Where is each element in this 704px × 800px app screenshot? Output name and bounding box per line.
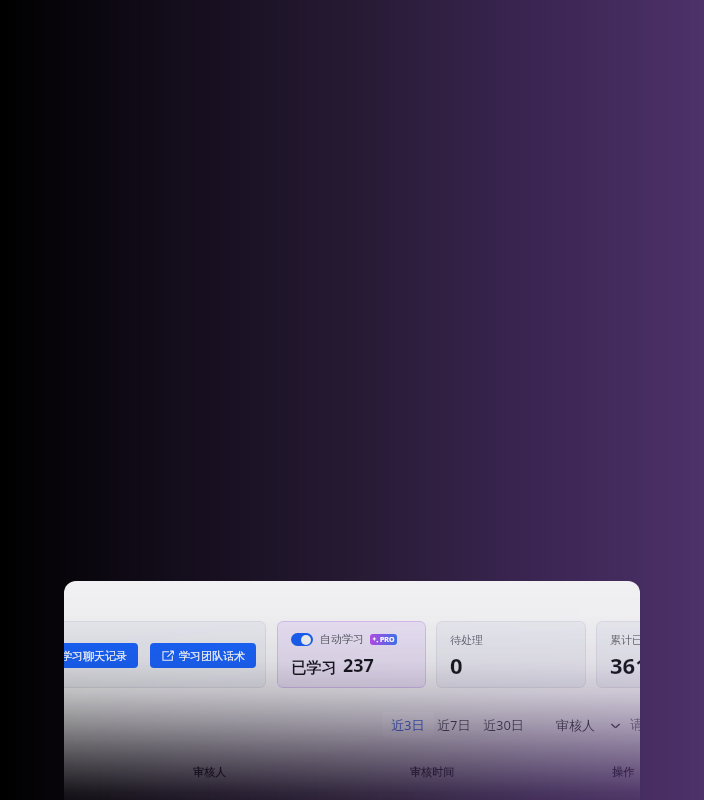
staticText: 操作: [612, 765, 634, 779]
button[interactable]: 待处理: [436, 621, 586, 688]
staticText: 近7日: [437, 716, 471, 734]
staticText: 自动学习: [320, 632, 364, 646]
staticText: 审核人: [556, 717, 595, 733]
button[interactable]: 学习团队话术: [150, 643, 256, 668]
button[interactable]: 学习聊天记录: [64, 643, 138, 668]
staticText: 学习团队话术: [179, 649, 245, 663]
staticText: 近30日: [483, 716, 524, 734]
staticText: 3615: [610, 650, 640, 680]
staticText: 审核人: [193, 765, 226, 779]
staticText: 学习聊天记录: [64, 649, 127, 663]
staticText: 待处理: [450, 633, 483, 647]
button[interactable]: 近3日: [382, 712, 434, 738]
staticText: 0: [450, 650, 463, 680]
staticText: 请选择: [630, 716, 640, 732]
staticText: 累计已学习: [610, 633, 640, 647]
staticText: 审核时间: [410, 765, 454, 779]
button[interactable]: 近7日: [428, 712, 480, 738]
button[interactable]: 自动学习开关: [291, 633, 313, 646]
button[interactable]: 审核人: [544, 712, 634, 738]
button[interactable]: 累计已学习: [596, 621, 640, 688]
button[interactable]: 近30日: [474, 712, 533, 738]
staticText: 已学习: [291, 659, 336, 678]
staticText: 近3日: [391, 716, 425, 734]
staticText: 237: [343, 653, 374, 678]
staticText: PRO: [380, 635, 395, 645]
button[interactable]: 自动学习开关: [277, 621, 426, 688]
other: 展开: [609, 719, 622, 732]
